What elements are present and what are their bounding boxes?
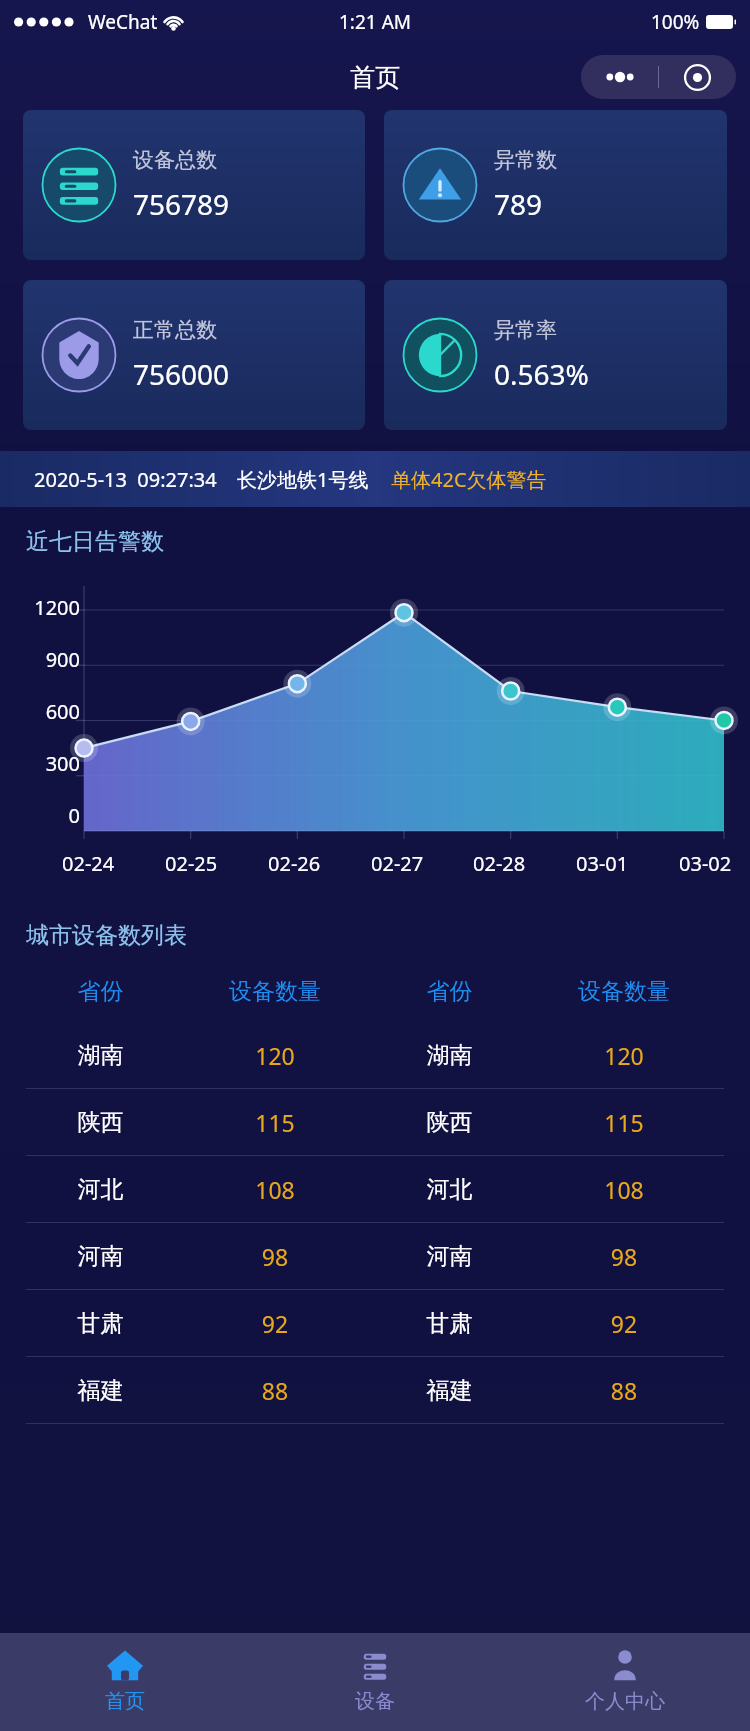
button[interactable]: 正常总数 [23, 280, 365, 430]
staticText: 02-27 [371, 850, 424, 877]
staticText: 108 [524, 1174, 724, 1205]
staticText: 92 [524, 1308, 724, 1339]
staticText: 首页 [105, 1689, 145, 1714]
button[interactable]: More options [581, 55, 658, 99]
staticText: 900 [0, 646, 80, 673]
staticText: 100% [651, 9, 700, 35]
staticText: 02-25 [165, 850, 218, 877]
staticText: 陕西 [26, 1108, 175, 1137]
staticText: 300 [0, 750, 80, 777]
staticText: 设备数量 [524, 977, 724, 1006]
button[interactable]: 设备 [250, 1633, 500, 1731]
staticText: 省份 [375, 977, 524, 1006]
button[interactable]: 湖南 [26, 1022, 724, 1088]
staticText: 02-26 [268, 850, 321, 877]
staticText: 0.563% [494, 355, 589, 393]
staticText: 河南 [375, 1242, 524, 1271]
button[interactable]: 河南 [26, 1223, 724, 1289]
staticText: 92 [175, 1308, 375, 1339]
staticText: 长沙地铁1号线 [237, 466, 369, 493]
staticText: 陕西 [375, 1108, 524, 1137]
staticText: 城市设备数列表 [26, 921, 187, 950]
staticText: 异常率 [494, 317, 557, 343]
staticText: 湖南 [26, 1041, 175, 1070]
staticText: 115 [175, 1107, 375, 1138]
staticText: 120 [524, 1040, 724, 1071]
staticText: 756789 [133, 185, 230, 223]
button[interactable]: 异常数 [384, 110, 727, 260]
staticText: 河南 [26, 1242, 175, 1271]
button[interactable]: 福建 [26, 1357, 724, 1423]
staticText: 河北 [375, 1175, 524, 1204]
staticText: 1200 [0, 594, 80, 621]
staticText: 甘肃 [375, 1309, 524, 1338]
staticText: 03-01 [576, 850, 629, 877]
staticText: 02-28 [473, 850, 526, 877]
staticText: WeChat [88, 9, 158, 35]
button[interactable]: 设备总数 [23, 110, 365, 260]
staticText: 03-02 [679, 850, 732, 877]
staticText: 福建 [26, 1376, 175, 1405]
staticText: 个人中心 [585, 1689, 665, 1714]
staticText: 108 [175, 1174, 375, 1205]
staticText: 近七日告警数 [26, 527, 164, 556]
staticText: 02-24 [62, 850, 115, 877]
staticText: 600 [0, 698, 80, 725]
staticText: 789 [494, 185, 543, 223]
staticText: 省份 [26, 977, 175, 1006]
staticText: 异常数 [494, 147, 557, 173]
staticText: 设备总数 [133, 147, 217, 173]
button[interactable]: 异常率 [384, 280, 727, 430]
staticText: 98 [524, 1241, 724, 1272]
staticText: 甘肃 [26, 1309, 175, 1338]
staticText: 1:21 AM [339, 9, 412, 35]
staticText: 120 [175, 1040, 375, 1071]
button[interactable]: 个人中心 [500, 1633, 750, 1731]
staticText: 湖南 [375, 1041, 524, 1070]
staticText: 正常总数 [133, 317, 217, 343]
staticText: 河北 [26, 1175, 175, 1204]
button[interactable]: 2020-5-13 09:27:34 [0, 451, 750, 507]
staticText: 2020-5-13 09:27:34 [34, 466, 217, 493]
button[interactable]: 首页 [0, 1633, 250, 1731]
button[interactable]: 甘肃 [26, 1290, 724, 1356]
staticText: 98 [175, 1241, 375, 1272]
staticText: 福建 [375, 1376, 524, 1405]
staticText: 首页 [350, 62, 400, 93]
staticText: 88 [524, 1375, 724, 1406]
staticText: 设备 [355, 1689, 395, 1714]
staticText: 756000 [133, 355, 230, 393]
staticText: 设备数量 [175, 977, 375, 1006]
button[interactable]: Close [659, 55, 736, 99]
staticText: 115 [524, 1107, 724, 1138]
button[interactable]: 陕西 [26, 1089, 724, 1155]
button[interactable]: 河北 [26, 1156, 724, 1222]
staticText: 88 [175, 1375, 375, 1406]
staticText: 0 [0, 802, 80, 829]
staticText: 单体42C欠体警告 [391, 466, 547, 493]
